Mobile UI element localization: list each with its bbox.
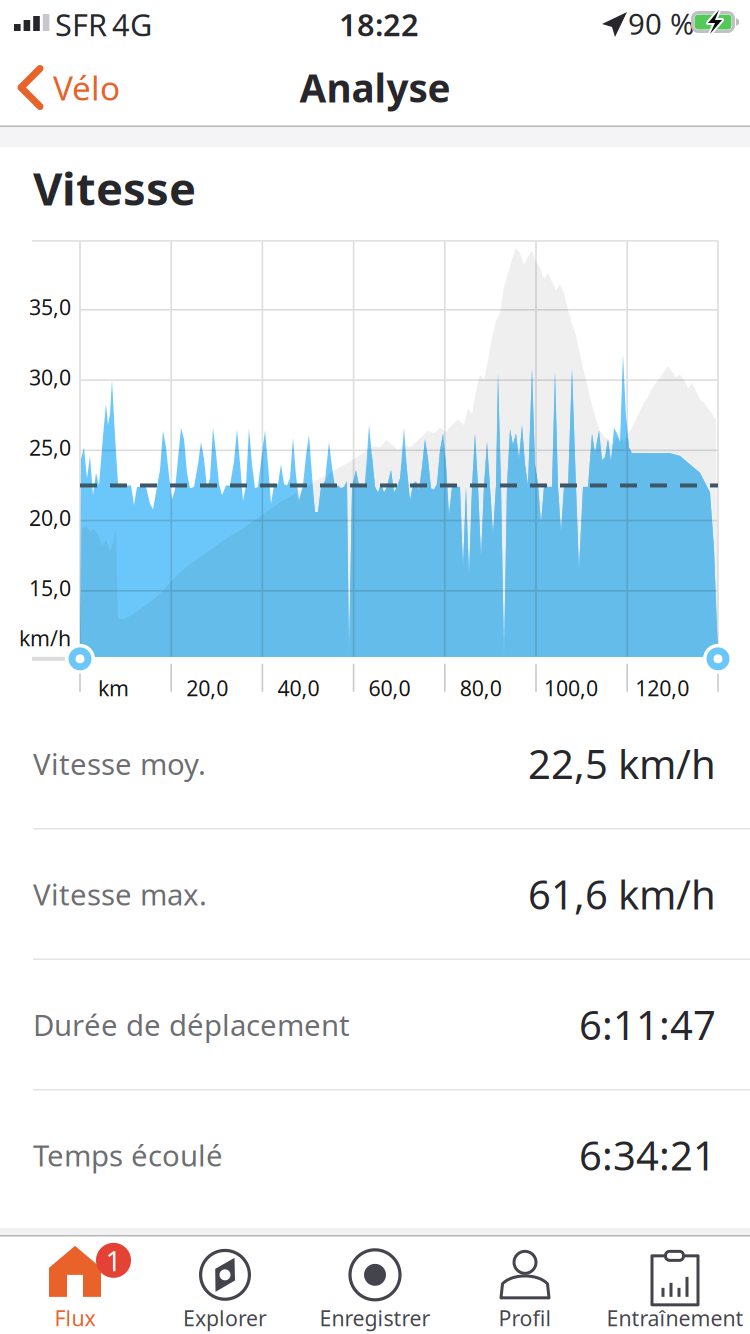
staticText: Vitesse: [33, 158, 196, 218]
staticText: 20,0: [29, 504, 71, 532]
staticText: 100,0: [544, 674, 598, 702]
staticText: 25,0: [29, 433, 71, 462]
staticText: 15,0: [29, 574, 71, 602]
staticText: Analyse: [299, 62, 450, 113]
staticText: Durée de déplacement: [33, 1005, 350, 1044]
staticText: 22,5 km/h: [528, 737, 716, 790]
staticText: SFR: [55, 4, 107, 45]
button[interactable]: Vitesse moy.: [0, 699, 750, 828]
button[interactable]: Vitesse max.: [0, 829, 750, 958]
staticText: km/h: [19, 624, 71, 652]
staticText: Vélo: [53, 65, 120, 110]
staticText: Flux: [54, 1304, 95, 1332]
staticText: 1: [105, 1242, 121, 1279]
staticText: 4G: [112, 4, 152, 45]
staticText: 40,0: [277, 674, 319, 702]
staticText: 90 %: [628, 4, 694, 43]
staticText: Vitesse max.: [33, 874, 207, 913]
staticText: Temps écoulé: [33, 1135, 223, 1174]
staticText: 80,0: [460, 674, 502, 702]
staticText: 120,0: [635, 674, 689, 702]
button[interactable]: Explorer: [150, 1235, 300, 1334]
staticText: 35,0: [29, 293, 71, 321]
staticText: 6:11:47: [579, 998, 716, 1051]
staticText: 20,0: [186, 674, 228, 702]
staticText: km: [98, 674, 129, 702]
staticText: Entraînement: [606, 1304, 743, 1332]
button[interactable]: 1: [0, 1235, 150, 1334]
staticText: Vitesse moy.: [33, 744, 206, 783]
staticText: Enregistrer: [319, 1304, 430, 1332]
staticText: Explorer: [183, 1304, 267, 1332]
button[interactable]: Entraînement: [600, 1235, 750, 1334]
staticText: 18:22: [339, 4, 419, 45]
staticText: 30,0: [29, 363, 71, 391]
button[interactable]: Temps écoulé: [0, 1090, 750, 1219]
staticText: Profil: [498, 1304, 551, 1332]
staticText: 60,0: [369, 674, 411, 702]
button[interactable]: Durée de déplacement: [0, 960, 750, 1089]
staticText: 61,6 km/h: [528, 867, 716, 920]
staticText: 6:34:21: [579, 1128, 716, 1181]
button[interactable]: Enregistrer: [300, 1235, 450, 1334]
button[interactable]: Vélo: [0, 48, 134, 127]
button[interactable]: Profil: [450, 1235, 600, 1334]
